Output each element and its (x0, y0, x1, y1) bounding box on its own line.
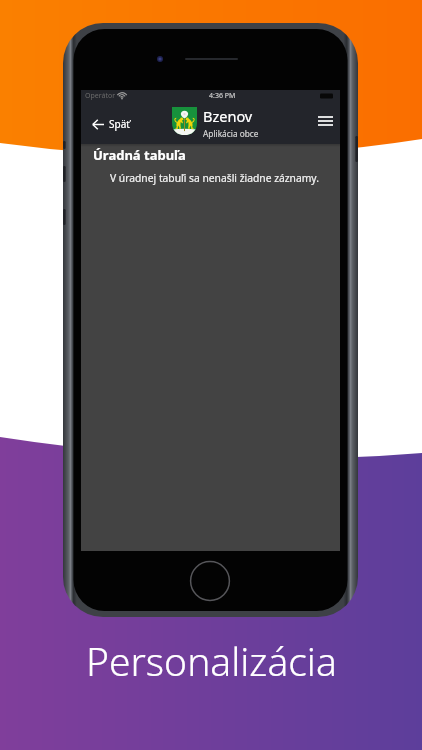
staticText: Operátor (85, 91, 116, 101)
staticText: Personalizácia (86, 634, 337, 687)
staticText: Bzenov (203, 106, 253, 126)
staticText: 4:36 PM (209, 91, 236, 101)
staticText: Úradná tabuľa (93, 146, 186, 164)
button[interactable]: Späť (86, 111, 136, 137)
button[interactable]: Menu (310, 110, 341, 132)
staticText: V úradnej tabuľi sa nenašli žiadne zázna… (110, 171, 319, 185)
staticText: Späť (109, 117, 130, 131)
staticText: Aplikácia obce (203, 128, 259, 139)
